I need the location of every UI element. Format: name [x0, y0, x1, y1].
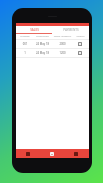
staticText: 1	[17, 51, 33, 55]
staticText: TOTAL AMOUNT	[52, 35, 73, 38]
staticText: PAYMENTS	[63, 28, 79, 32]
button[interactable]: New sale	[41, 149, 65, 158]
staticText: 1200	[52, 51, 73, 55]
button[interactable]: 1	[17, 49, 88, 57]
staticText: SALES	[30, 28, 39, 32]
staticText: 2000	[52, 42, 73, 46]
staticText: 001	[17, 42, 33, 46]
button[interactable]: Dashboard	[16, 149, 41, 158]
button[interactable]: 001	[17, 40, 88, 48]
staticText: 24 May 18	[33, 51, 52, 55]
staticText: SALES DATE	[33, 35, 52, 38]
staticText: 24 May 18	[33, 42, 52, 46]
button[interactable]: Account	[65, 149, 89, 158]
button[interactable]: Status	[78, 42, 82, 46]
button[interactable]: Status	[78, 51, 82, 55]
staticText: INVOICE	[17, 35, 33, 38]
button[interactable]: SALES	[16, 26, 52, 34]
staticText: STATUS	[73, 35, 88, 38]
button[interactable]: PAYMENTS	[52, 26, 89, 34]
